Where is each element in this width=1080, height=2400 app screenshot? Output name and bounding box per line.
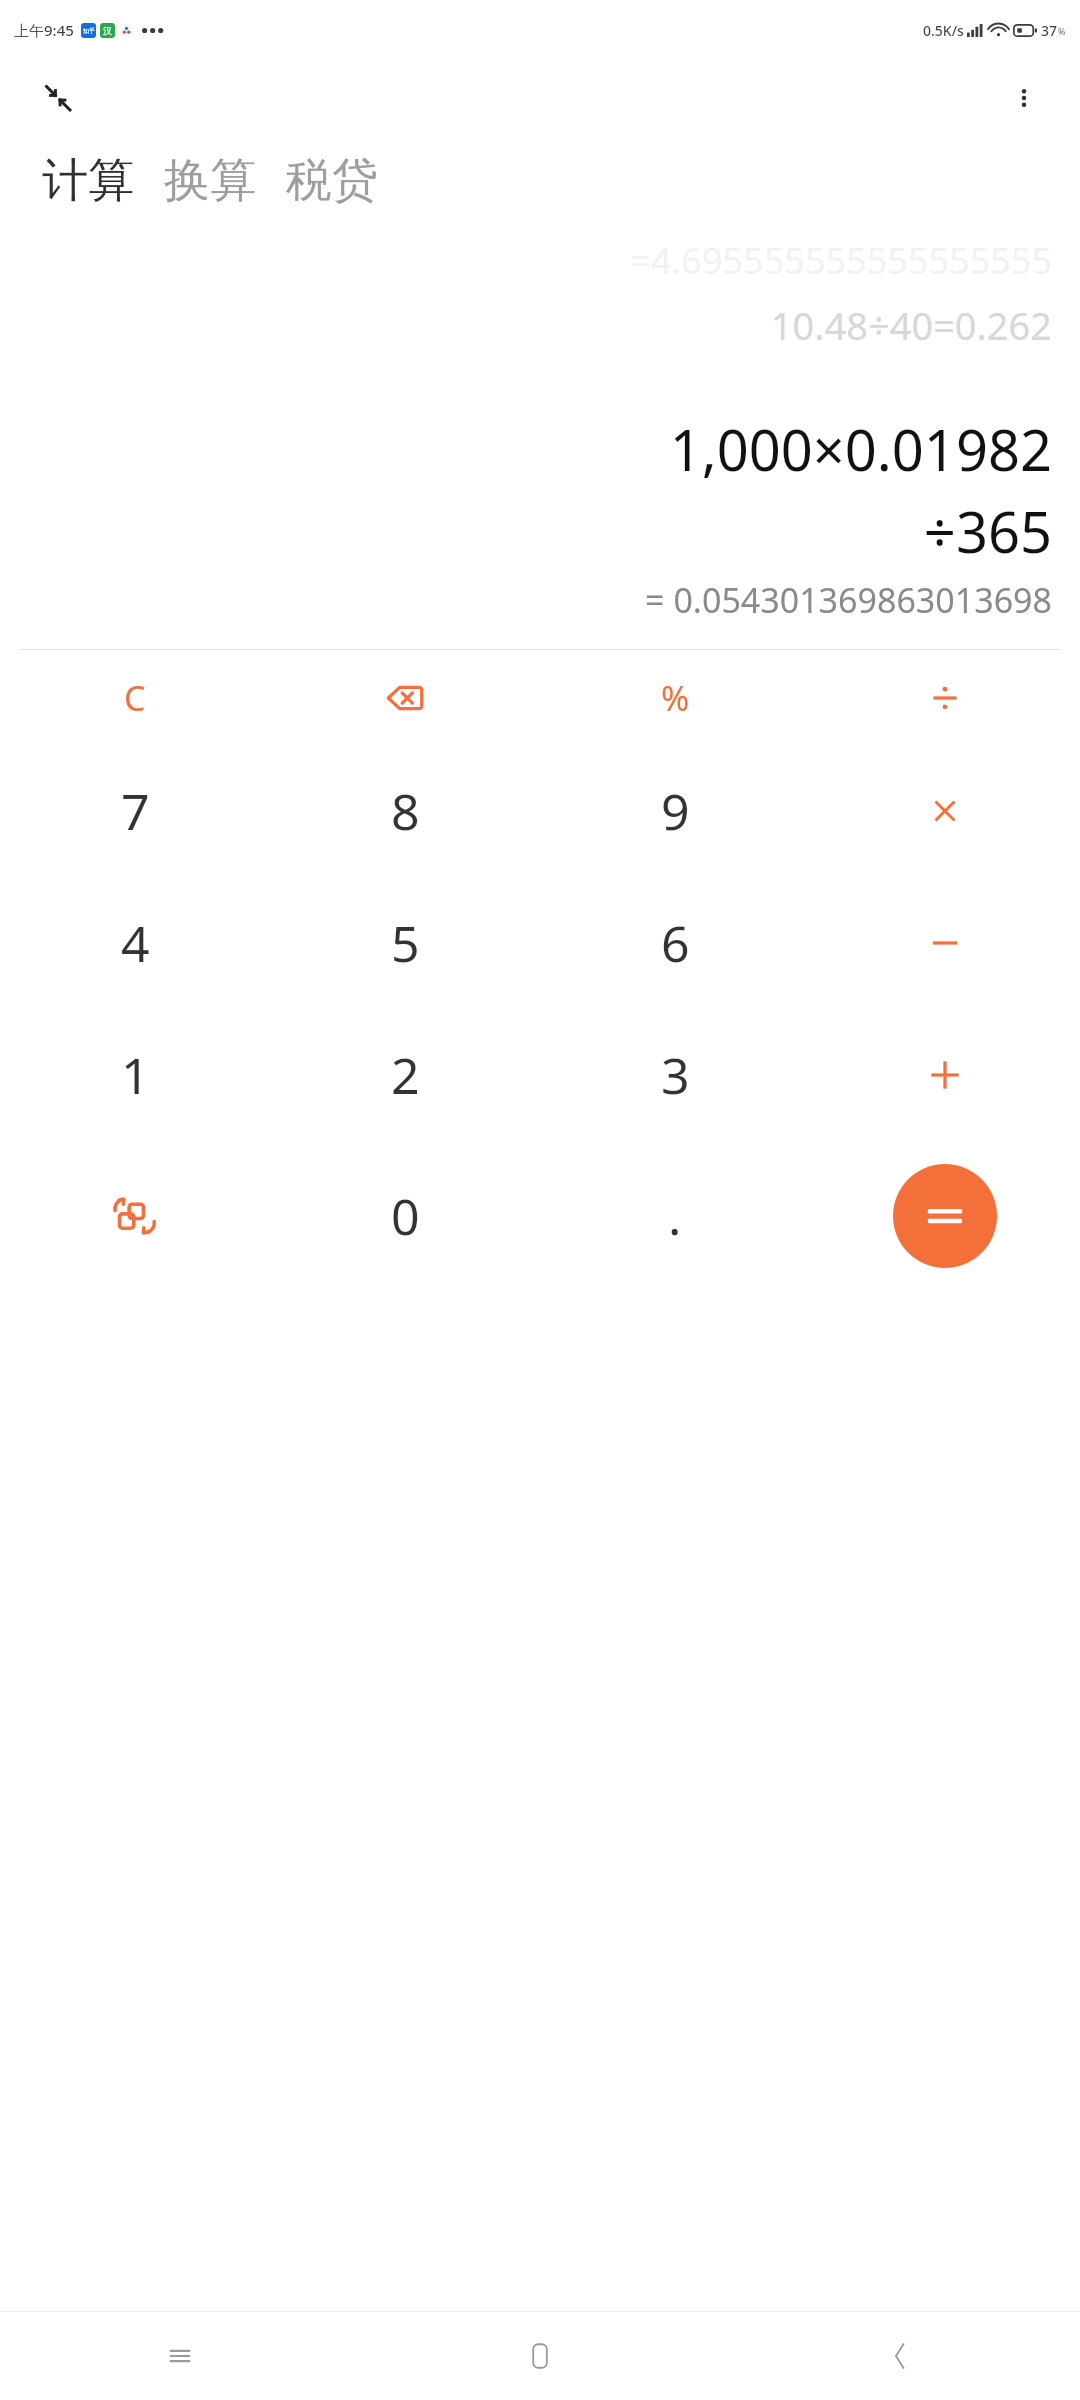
- button[interactable]: 3: [540, 1009, 810, 1141]
- button[interactable]: 1: [0, 1009, 270, 1141]
- staticText: 8: [391, 777, 420, 845]
- staticText: C: [124, 675, 146, 721]
- staticText: 汉: [103, 25, 112, 36]
- button[interactable]: 4: [0, 877, 270, 1009]
- staticText: 计算: [42, 152, 134, 210]
- button[interactable]: 6: [540, 877, 810, 1009]
- staticText: =4.695555555555555555: [630, 236, 1052, 285]
- staticText: %: [661, 675, 690, 721]
- button[interactable]: 计算: [34, 150, 142, 212]
- staticText: 37: [1041, 21, 1058, 40]
- button[interactable]: More options: [996, 70, 1052, 126]
- staticText: 3: [661, 1041, 690, 1109]
- button[interactable]: 2: [270, 1009, 540, 1141]
- staticText: 7: [121, 777, 150, 845]
- button[interactable]: [810, 650, 1080, 745]
- button[interactable]: 税贷: [278, 150, 386, 212]
- staticText: 知乎: [83, 27, 95, 35]
- staticText: .: [668, 1182, 682, 1250]
- button[interactable]: .: [540, 1141, 810, 1291]
- staticText: 9: [661, 777, 690, 845]
- button[interactable]: Recents: [0, 2312, 360, 2400]
- button[interactable]: 换算: [156, 150, 264, 212]
- button[interactable]: Back: [720, 2312, 1080, 2400]
- staticText: %: [1058, 25, 1066, 37]
- staticText: 1: [121, 1041, 150, 1109]
- button[interactable]: 5: [270, 877, 540, 1009]
- button[interactable]: Home: [360, 2312, 720, 2400]
- staticText: 税贷: [286, 152, 378, 210]
- button[interactable]: Equals: [893, 1164, 997, 1268]
- button[interactable]: Collapse: [30, 70, 86, 126]
- staticText: 6: [661, 909, 690, 977]
- staticText: 换算: [164, 152, 256, 210]
- button[interactable]: %: [540, 650, 810, 745]
- button[interactable]: Convert: [0, 1141, 270, 1291]
- button[interactable]: 8: [270, 745, 540, 877]
- staticText: 10.48÷40=0.262: [770, 299, 1052, 351]
- button[interactable]: C: [0, 650, 270, 745]
- button[interactable]: Backspace: [270, 650, 540, 745]
- staticText: 5: [391, 909, 420, 977]
- button[interactable]: Multiply: [810, 745, 1080, 877]
- staticText: 0.5K/s: [923, 21, 964, 40]
- staticText: ÷365: [923, 493, 1052, 569]
- staticText: = 0.054301369863013698: [645, 577, 1052, 623]
- staticText: 0: [391, 1182, 420, 1250]
- staticText: 1,000×0.01982: [669, 411, 1052, 487]
- button[interactable]: 9: [540, 745, 810, 877]
- staticText: 4: [121, 909, 150, 977]
- button[interactable]: 0: [270, 1141, 540, 1291]
- button[interactable]: Minus: [810, 877, 1080, 1009]
- button[interactable]: Plus: [810, 1009, 1080, 1141]
- staticText: 2: [391, 1041, 420, 1109]
- staticText: 上午9:45: [14, 20, 74, 40]
- button[interactable]: 7: [0, 745, 270, 877]
